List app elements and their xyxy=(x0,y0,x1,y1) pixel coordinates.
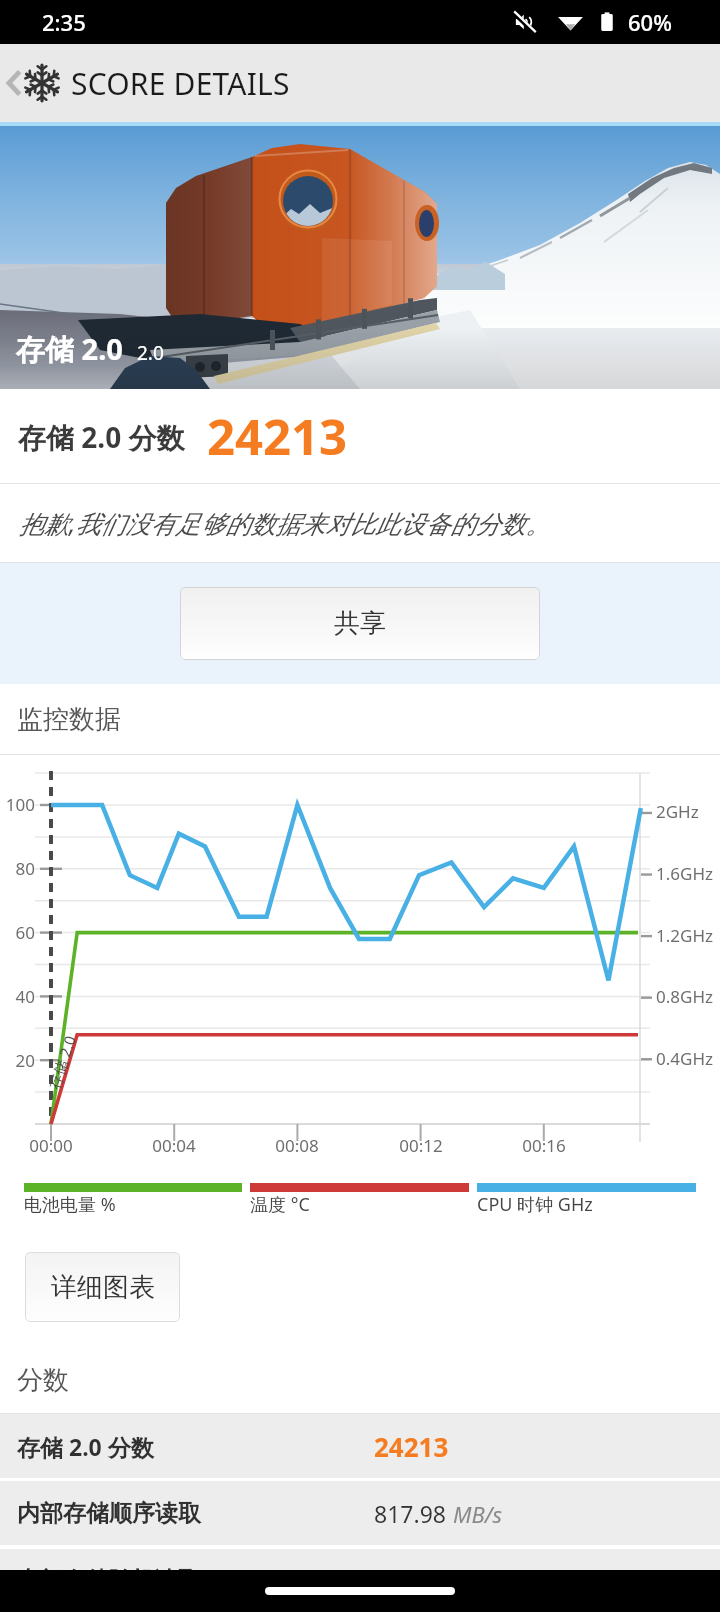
staticText: 监控数据 xyxy=(17,703,121,736)
staticText: 2:35 xyxy=(42,7,86,37)
staticText: CPU 时钟 GHz xyxy=(477,1192,696,1217)
staticText: 内部存储随机读取 xyxy=(17,1566,201,1595)
staticText: 00:04 xyxy=(136,1134,212,1157)
other: Back xyxy=(6,70,22,96)
staticText: 1.6GHz xyxy=(656,862,713,885)
staticText: 24213 xyxy=(374,1429,449,1464)
staticText: MB/s xyxy=(453,1499,503,1529)
staticText: MB/s xyxy=(440,1566,490,1596)
staticText: 电池电量 % xyxy=(24,1192,242,1217)
staticText: 24213 xyxy=(207,403,348,470)
staticText: 0.4GHz xyxy=(656,1047,713,1070)
staticText: 60 xyxy=(0,921,35,944)
staticText: 共享 xyxy=(334,607,386,640)
staticText: 存储 2.0 xyxy=(44,1032,80,1092)
button[interactable]: Back xyxy=(0,44,720,122)
staticText: 00:00 xyxy=(13,1134,89,1157)
staticText: 温度 °C xyxy=(250,1192,469,1217)
staticText: 60% xyxy=(628,7,672,37)
staticText: 内部存储顺序读取 xyxy=(17,1499,201,1528)
staticText: 40 xyxy=(0,985,35,1008)
staticText: 80 xyxy=(0,857,35,880)
button[interactable]: 详细图表 xyxy=(25,1252,180,1322)
staticText: 详细图表 xyxy=(51,1271,155,1304)
staticText: 0.8GHz xyxy=(656,985,713,1008)
staticText: 00:08 xyxy=(259,1134,335,1157)
staticText: 817.98 xyxy=(374,1498,446,1529)
staticText: 存储 2.0 xyxy=(16,329,123,369)
staticText: 458.4 xyxy=(374,1565,433,1596)
staticText: 20 xyxy=(0,1049,35,1072)
button[interactable]: 内部存储顺序读取 xyxy=(0,1481,720,1545)
staticText: 00:12 xyxy=(383,1134,459,1157)
staticText: 100 xyxy=(0,793,35,816)
staticText: 存储 2.0 分数 xyxy=(17,1431,154,1462)
button[interactable]: 共享 xyxy=(180,587,540,660)
staticText: 抱歉,我们没有足够的数据来对比此设备的分数。 xyxy=(19,506,551,540)
staticText: 2.0 xyxy=(137,340,164,366)
button[interactable]: 存储 2.0 分数 xyxy=(0,1414,720,1478)
staticText: 分数 xyxy=(17,1364,69,1397)
staticText: SCORE DETAILS xyxy=(71,63,290,104)
staticText: 00:16 xyxy=(506,1134,582,1157)
staticText: 2GHz xyxy=(656,800,699,823)
staticText: 存储 2.0 分数 xyxy=(18,418,185,456)
button[interactable]: 内部存储随机读取 xyxy=(0,1549,720,1612)
staticText: 1.2GHz xyxy=(656,924,713,947)
